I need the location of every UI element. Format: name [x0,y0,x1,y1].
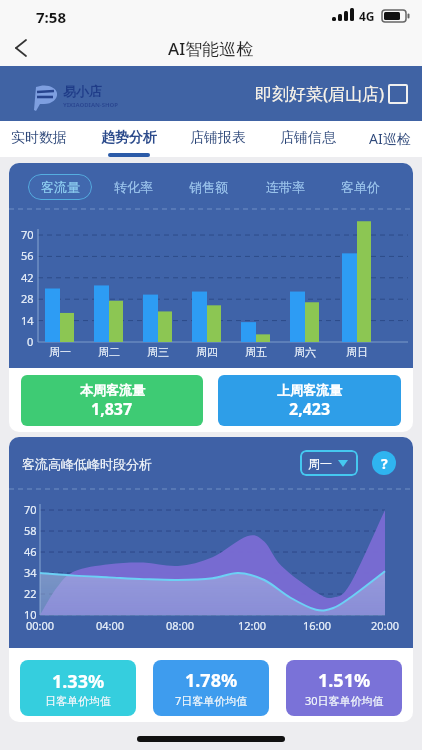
button[interactable]: ? [372,451,396,475]
staticText: 16:00 [303,618,332,633]
staticText: 周六 [294,345,316,359]
staticText: 转化率 [114,179,153,195]
staticText: YIXIAODIAN·SHOP [63,101,119,109]
staticText: 7:58 [36,7,66,27]
button[interactable]: 连带率 [266,174,305,200]
staticText: 周五 [245,345,267,359]
button[interactable]: 1.78% [153,660,269,716]
button[interactable]: 销售额 [189,174,228,200]
staticText: 上周客流量 [277,382,342,398]
staticText: 1.78% [185,668,238,693]
button[interactable]: 趋势分析 [101,121,157,157]
staticText: AI智能巡检 [168,37,254,60]
staticText: 2,423 [289,398,331,420]
staticText: 08:00 [166,618,195,633]
button[interactable]: 上周客流量 [218,375,401,426]
staticText: 周四 [196,345,218,359]
staticText: 店铺信息 [280,129,336,147]
button[interactable] [0,30,36,66]
staticText: AI巡检 [369,129,411,148]
staticText: 客流高峰低峰时段分析 [22,456,152,472]
staticText: 56 [21,248,34,263]
staticText: 易小店 [63,83,102,99]
staticText: 20:00 [371,618,400,633]
staticText: 即刻好菜(眉山店) [255,82,385,105]
staticText: 14 [21,313,34,328]
staticText: 趋势分析 [101,129,157,147]
button[interactable]: 即刻好菜(眉山店) [255,82,408,105]
staticText: 42 [21,270,34,285]
staticText: 70 [21,227,34,242]
staticText: ? [381,454,388,473]
staticText: 34 [24,565,37,580]
button[interactable]: 实时数据 [11,121,67,157]
button[interactable]: AI巡检 [369,121,411,157]
staticText: 12:00 [238,618,267,633]
staticText: 销售额 [189,179,228,195]
staticText: 客流量 [41,179,80,195]
staticText: 1.33% [52,669,105,694]
staticText: 46 [24,544,37,559]
staticText: 70 [24,502,37,517]
button[interactable]: 转化率 [114,174,153,200]
staticText: 周一 [308,456,332,471]
staticText: 22 [24,586,37,601]
staticText: 店铺报表 [190,129,246,147]
staticText: 实时数据 [11,129,67,147]
staticText: 10 [24,607,37,622]
staticText: 58 [24,523,37,538]
staticText: 日客单价均值 [45,694,111,708]
staticText: 1.51% [318,668,371,693]
staticText: 周一 [49,345,71,359]
staticText: 客单价 [341,179,380,195]
button[interactable]: 1.33% [20,660,136,716]
button[interactable]: 客流量 [28,174,92,200]
staticText: 周日 [346,345,368,359]
button[interactable]: 1.51% [286,660,402,716]
staticText: 28 [21,291,34,306]
staticText: 连带率 [266,179,305,195]
staticText: 周二 [98,345,120,359]
staticText: 0 [27,334,34,349]
button[interactable]: 本周客流量 [21,375,203,426]
button[interactable]: 周一 [300,450,358,476]
staticText: 00:00 [26,618,55,633]
staticText: 7日客单价均值 [175,693,248,708]
staticText: 1,837 [91,398,133,420]
staticText: 4G [359,8,375,24]
staticText: 周三 [147,345,169,359]
button[interactable]: 客单价 [341,174,380,200]
button[interactable]: 店铺报表 [190,121,246,157]
staticText: 本周客流量 [80,382,145,398]
staticText: 30日客单价均值 [305,693,384,708]
button[interactable]: 店铺信息 [280,121,336,157]
staticText: 04:00 [96,618,125,633]
